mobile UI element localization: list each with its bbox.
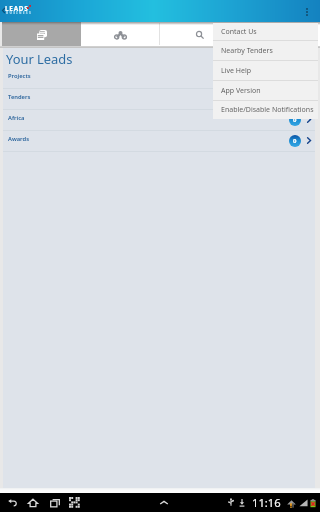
button[interactable]: Projects: [3, 68, 315, 88]
button[interactable]: Screenshot: [69, 497, 80, 508]
button[interactable]: Contact Us: [213, 23, 318, 40]
staticText: Enable/Disable Notifications: [221, 105, 314, 115]
staticText: BUSINESS: [6, 10, 32, 14]
staticText: Tenders: [8, 93, 31, 101]
button[interactable]: More options: [301, 0, 320, 22]
staticText: 0: [293, 137, 297, 145]
staticText: 0: [293, 116, 297, 124]
button[interactable]: More: [240, 22, 320, 46]
staticText: LEADS: [5, 4, 29, 13]
staticText: Contact Us: [221, 27, 257, 37]
button[interactable]: Recents: [49, 497, 61, 509]
staticText: Africa: [8, 114, 25, 122]
staticText: Live Help: [221, 66, 252, 76]
button[interactable]: Back: [6, 497, 18, 509]
staticText: 11:16: [252, 495, 281, 510]
button[interactable]: Live Help: [213, 61, 318, 80]
button[interactable]: App Version: [213, 81, 318, 100]
button[interactable]: Enable/Disable Notifications: [213, 101, 318, 119]
button[interactable]: Nearby Tenders: [213, 41, 318, 60]
staticText: 0: [293, 95, 297, 103]
button[interactable]: Network: [81, 22, 160, 46]
staticText: App Version: [221, 86, 261, 96]
button[interactable]: Leads: [2, 22, 81, 46]
staticText: 0: [293, 74, 297, 82]
button[interactable]: Tenders: [3, 89, 315, 109]
button[interactable]: Expand: [159, 498, 169, 508]
staticText: Awards: [8, 135, 29, 143]
staticText: Your Leads: [6, 50, 73, 68]
staticText: Projects: [8, 72, 31, 80]
button[interactable]: Awards: [3, 131, 315, 151]
button[interactable]: Africa: [3, 110, 315, 130]
button[interactable]: Home: [27, 497, 39, 509]
button[interactable]: Search: [160, 22, 240, 46]
staticText: Nearby Tenders: [221, 46, 273, 56]
